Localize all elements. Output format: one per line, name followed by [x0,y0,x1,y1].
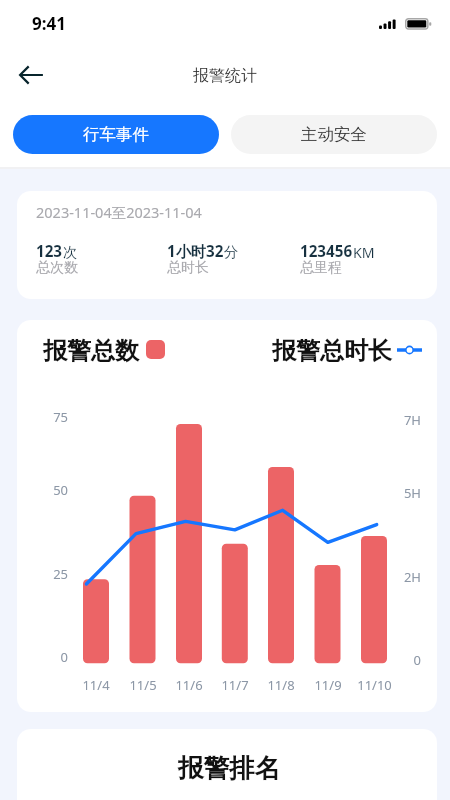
staticText: 次 [63,243,78,261]
staticText: 报警统计 [193,66,257,86]
staticText: 总里程 [300,259,342,277]
staticText: 11/7 [221,676,249,694]
other: Cellular signal [379,19,398,29]
staticText: 行车事件 [83,124,149,145]
button[interactable]: 2023-11-04至2023-11-04 [36,199,286,225]
staticText: 7H [403,411,421,429]
staticText: 9:41 [32,12,66,35]
staticText: 11/6 [175,676,203,694]
staticText: 5H [403,484,421,502]
staticText: 2H [403,568,421,586]
staticText: 25 [53,565,68,583]
staticText: 11/9 [314,676,342,694]
staticText: 75 [53,408,68,426]
button[interactable]: 主动安全 [231,115,437,154]
staticText: 50 [53,481,68,499]
staticText: 报警排名 [178,752,280,784]
staticText: KM [353,243,375,262]
staticText: 11/10 [357,676,392,694]
staticText: 123 [36,241,63,262]
staticText: 1小时32 [167,241,224,262]
staticText: 报警总数 [43,336,139,366]
staticText: 分 [224,243,239,261]
staticText: 11/8 [267,676,295,694]
staticText: 0 [60,648,68,666]
staticText: 主动安全 [301,124,367,145]
button[interactable]: Back [6,55,54,95]
other: Battery full [405,18,431,30]
staticText: 11/5 [129,676,157,694]
staticText: 总次数 [36,259,78,277]
button[interactable]: 行车事件 [13,115,219,154]
staticText: 123456 [300,241,353,262]
staticText: 总时长 [167,259,209,277]
staticText: 11/4 [82,676,110,694]
staticText: 2023-11-04至2023-11-04 [36,202,202,222]
staticText: 报警总时长 [272,336,392,366]
staticText: 0 [413,651,421,669]
